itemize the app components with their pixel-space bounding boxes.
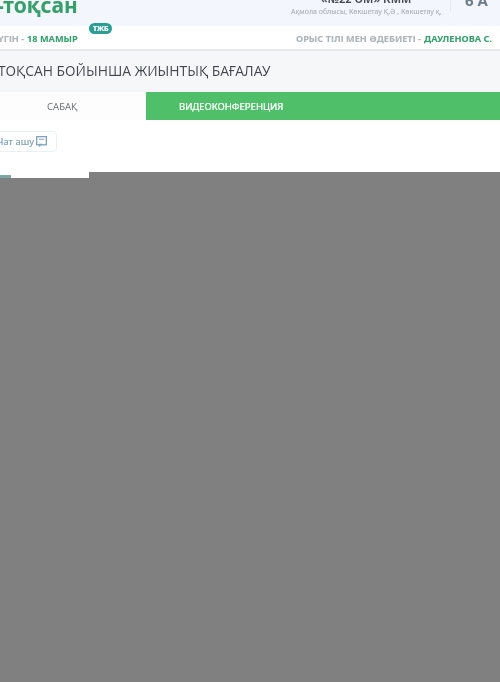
staticText: САБАҚ bbox=[47, 100, 78, 113]
staticText: Ақмола облысы, Көкшетау Қ.Ә , Көкшетау қ… bbox=[291, 7, 442, 17]
staticText: БҮГІН - bbox=[0, 32, 27, 45]
button[interactable]: САБАҚ bbox=[0, 92, 146, 120]
staticText: 6 А bbox=[465, 0, 488, 10]
button[interactable]: Чат ашу bbox=[0, 131, 57, 152]
button[interactable]: ВИДЕОКОНФЕРЕНЦИЯ bbox=[146, 92, 500, 120]
staticText: ТОҚСАН БОЙЫНША ЖИЫНТЫҚ БАҒАЛАУ bbox=[0, 61, 271, 80]
staticText: «№22 ОМ» КММ bbox=[321, 0, 412, 6]
staticText: ТЖБ bbox=[93, 24, 109, 34]
staticText: ВИДЕОКОНФЕРЕНЦИЯ bbox=[179, 100, 284, 113]
button[interactable]: ТЖБ bbox=[89, 23, 112, 34]
staticText: -тоқсан bbox=[0, 0, 78, 17]
staticText: Чат ашу bbox=[0, 135, 35, 148]
button[interactable]: 6 А bbox=[455, 0, 497, 12]
staticText: ОРЫС ТІЛІ МЕН ӘДЕБИЕТІ - bbox=[296, 32, 424, 45]
other: Чат ашу bbox=[36, 136, 47, 147]
button[interactable]: «№22 ОМ» КММ bbox=[286, 0, 446, 17]
staticText: 18 МАМЫР bbox=[27, 32, 78, 45]
staticText: ДАУЛЕНОВА С. bbox=[424, 32, 492, 45]
